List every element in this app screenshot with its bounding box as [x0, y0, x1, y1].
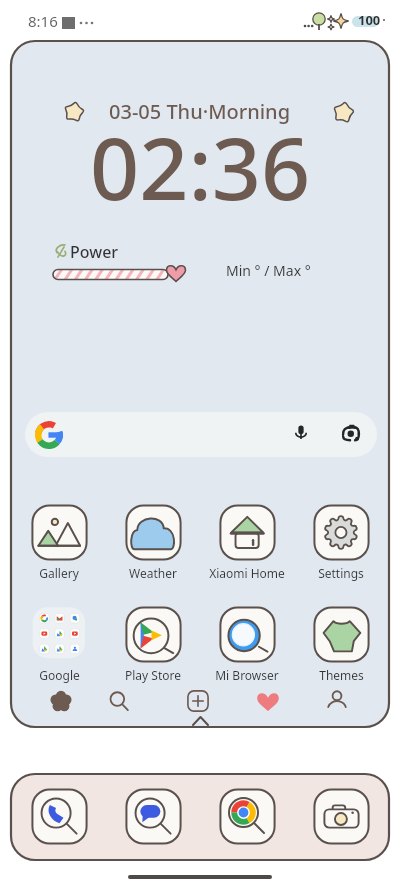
- button[interactable]: Chrome: [219, 788, 276, 845]
- staticText: Xiaomi Home: [209, 565, 285, 581]
- staticText: Themes: [319, 667, 364, 683]
- button[interactable]: Phone: [31, 788, 88, 845]
- staticText: 03-05 Thu·Morning: [109, 98, 291, 125]
- button[interactable]: Settings: [296, 504, 386, 581]
- button[interactable]: Favorites: [248, 681, 288, 721]
- button[interactable]: Mi Browser: [202, 606, 292, 683]
- button[interactable]: Profile: [317, 681, 357, 721]
- button[interactable]: Home: [41, 681, 81, 721]
- button[interactable]: Play Store: [108, 606, 198, 683]
- staticText: Play Store: [125, 667, 181, 683]
- staticText: Power: [70, 241, 119, 263]
- button[interactable]: Add: [178, 681, 218, 721]
- button[interactable]: Google: [14, 606, 104, 683]
- button[interactable]: Voice search: [290, 421, 312, 447]
- button[interactable]: Gallery: [14, 504, 104, 581]
- staticText: Mi Browser: [215, 667, 279, 683]
- button[interactable]: Google Lens: [339, 421, 363, 445]
- button[interactable]: Messages: [125, 788, 182, 845]
- button[interactable]: Weather: [108, 504, 198, 581]
- staticText: Weather: [129, 565, 177, 581]
- staticText: Gallery: [39, 565, 79, 581]
- staticText: 02:36: [90, 108, 311, 225]
- button[interactable]: Xiaomi Home: [202, 504, 292, 581]
- staticText: Google: [39, 667, 80, 683]
- staticText: 100: [358, 11, 381, 29]
- button[interactable]: Themes: [296, 606, 386, 683]
- staticText: 8:16: [28, 11, 58, 31]
- button[interactable]: Voice search: [25, 412, 377, 457]
- button[interactable]: Camera: [313, 788, 370, 845]
- button[interactable]: Search: [99, 681, 139, 721]
- staticText: Settings: [318, 565, 364, 581]
- staticText: Min ° / Max °: [226, 261, 311, 280]
